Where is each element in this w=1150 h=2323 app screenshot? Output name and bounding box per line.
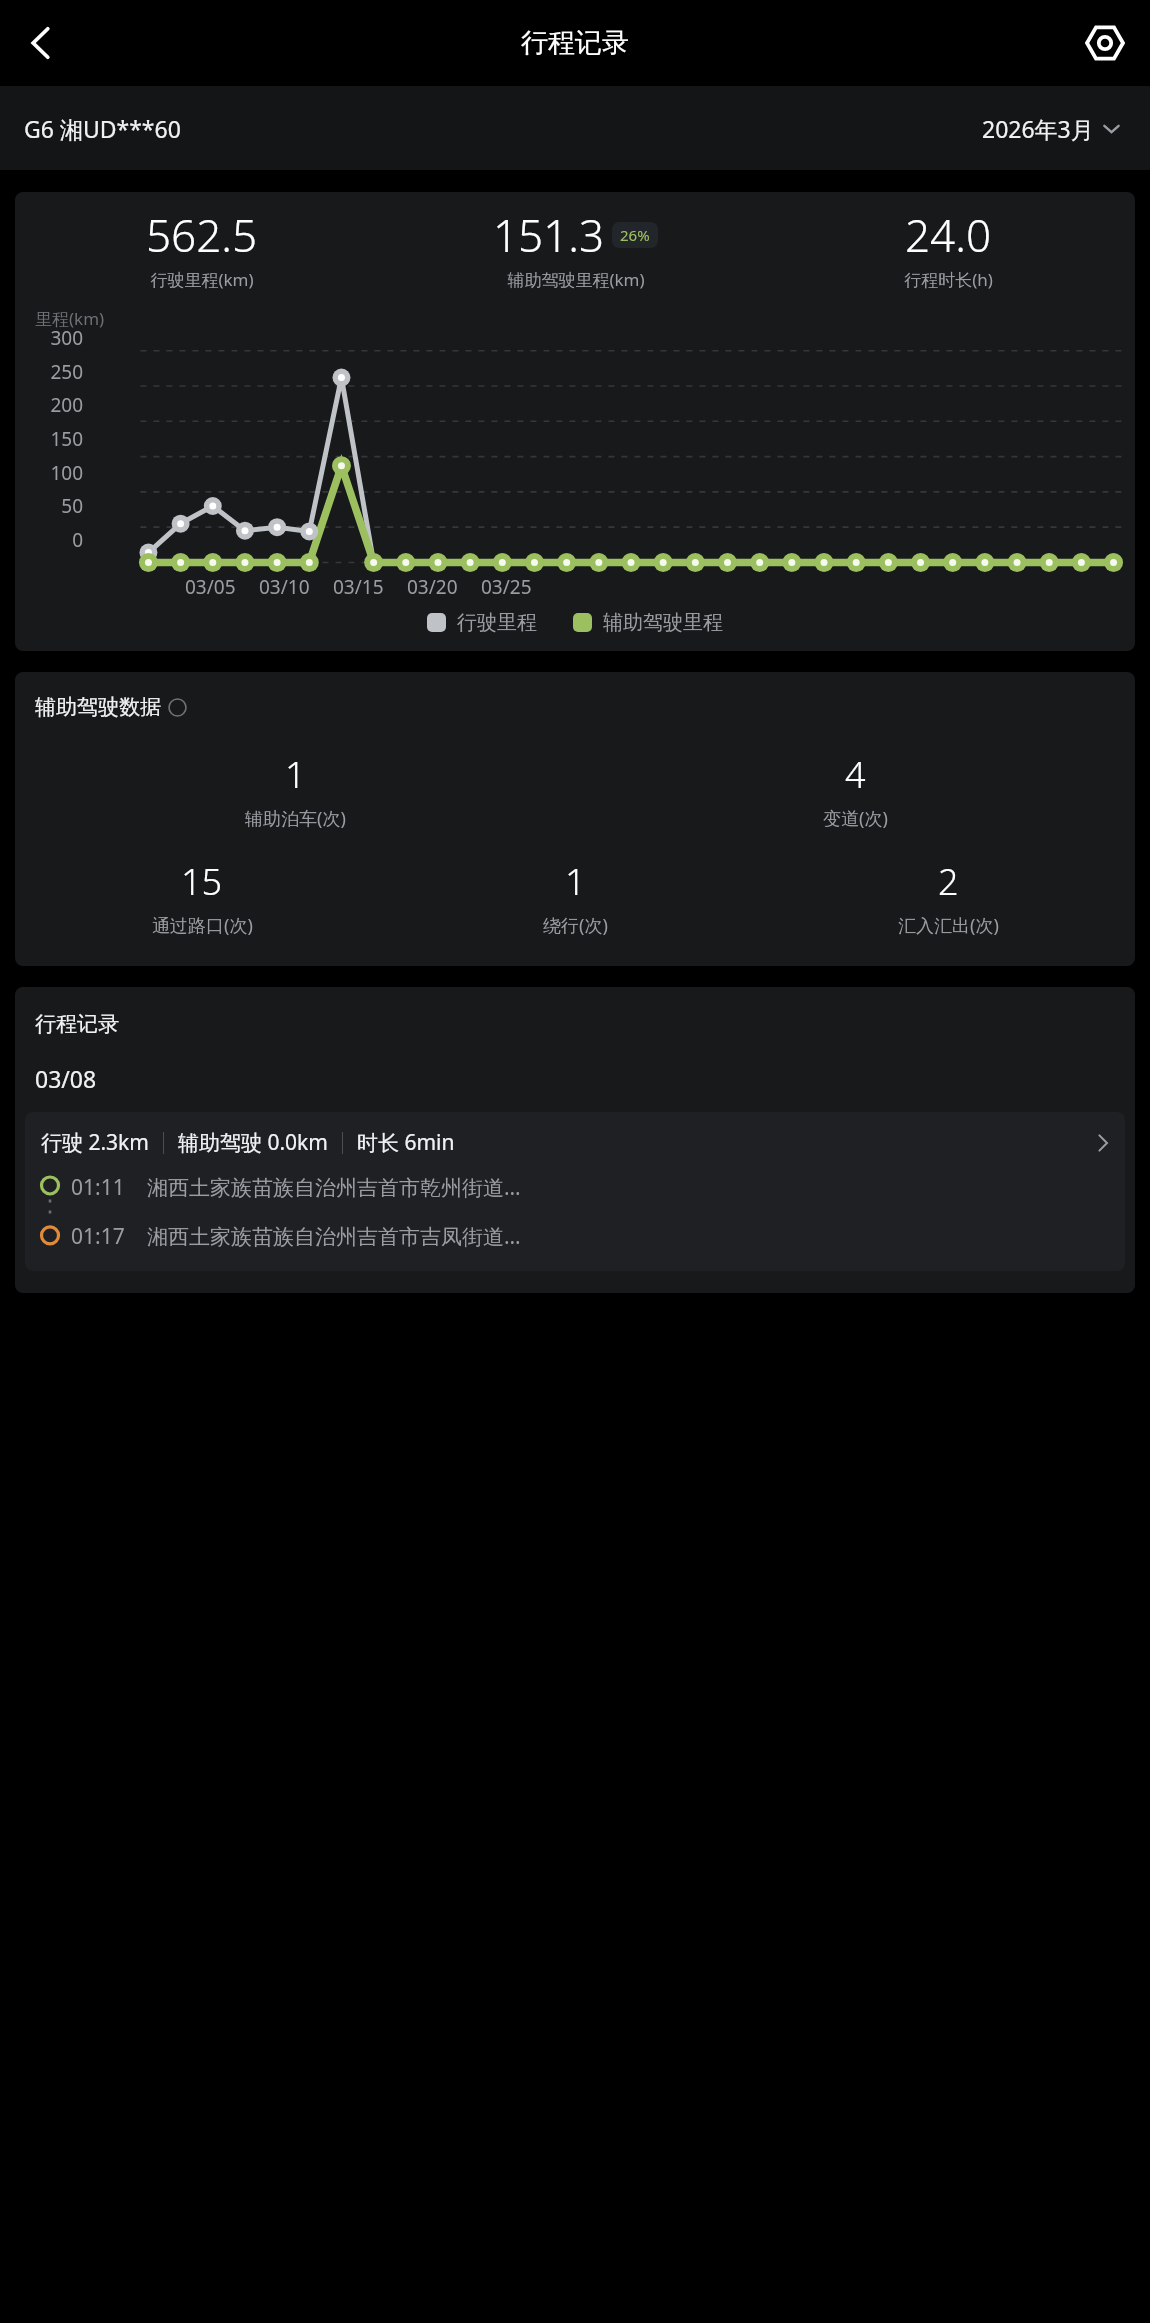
button[interactable]: 1	[15, 750, 575, 831]
button[interactable]: 返回	[4, 6, 78, 80]
staticText: 辅助驾驶数据	[35, 694, 161, 720]
staticText: 562.5	[146, 205, 258, 265]
staticText: 行程时长(h)	[904, 268, 993, 291]
button[interactable]: 辅助驾驶数据	[35, 694, 187, 720]
staticText: 汇入汇出(次)	[898, 913, 999, 938]
button[interactable]: 辅助驾驶里程	[573, 610, 723, 635]
staticText: 2	[938, 857, 959, 906]
staticText: 50	[29, 493, 83, 519]
staticText: G6 湘UD***60	[24, 113, 181, 144]
staticText: 行驶 2.3km	[41, 1128, 149, 1157]
staticText: 0	[29, 527, 83, 553]
button[interactable]: 行驶里程	[427, 610, 537, 635]
staticText: 151.3	[493, 205, 605, 265]
staticText: 绕行(次)	[543, 913, 608, 938]
staticText: 变道(次)	[823, 806, 888, 831]
staticText: 24.0	[905, 205, 992, 265]
staticText: 行程记录	[35, 1011, 119, 1037]
staticText: 03/25	[481, 574, 532, 600]
button[interactable]: 设置	[1068, 6, 1142, 80]
staticText: 01:17	[71, 1222, 125, 1251]
staticText: 行驶里程	[457, 610, 537, 635]
staticText: 300	[29, 325, 83, 351]
staticText: 250	[29, 359, 83, 385]
staticText: 辅助驾驶 0.0km	[178, 1128, 328, 1157]
button[interactable]: 4	[575, 750, 1135, 831]
staticText: 辅助驾驶里程(km)	[507, 268, 645, 291]
staticText: 时长 6min	[357, 1128, 455, 1157]
button[interactable]: 2	[762, 857, 1135, 938]
button[interactable]: 2026年3月	[976, 107, 1126, 150]
staticText: 湘西土家族苗族自治州吉首市乾州街道…	[147, 1173, 521, 1202]
button[interactable]: 1	[389, 857, 762, 938]
button[interactable]: 15	[15, 857, 389, 938]
staticText: 100	[29, 460, 83, 486]
button[interactable]: 562.5	[15, 205, 389, 291]
staticText: 湘西土家族苗族自治州吉首市吉凤街道…	[147, 1222, 521, 1251]
staticText: 通过路口(次)	[152, 913, 253, 938]
staticText: 辅助泊车(次)	[245, 806, 346, 831]
staticText: 03/10	[259, 574, 310, 600]
staticText: 200	[29, 392, 83, 418]
staticText: 150	[29, 426, 83, 452]
staticText: 行驶里程(km)	[150, 268, 254, 291]
staticText: 里程(km)	[35, 307, 105, 330]
staticText: 行程记录	[521, 26, 629, 60]
staticText: 15	[181, 857, 223, 906]
staticText: 03/08	[35, 1063, 97, 1094]
staticText: 26%	[620, 225, 650, 245]
staticText: 03/05	[185, 574, 236, 600]
staticText: 01:11	[71, 1173, 125, 1202]
staticText: 1	[285, 750, 306, 799]
staticText: 辅助驾驶里程	[603, 610, 723, 635]
button[interactable]: 151.3	[389, 205, 762, 291]
button[interactable]: 24.0	[762, 205, 1135, 291]
button[interactable]: 行驶 2.3km	[25, 1112, 1125, 1271]
staticText: 4	[845, 750, 866, 799]
staticText: 03/15	[333, 574, 384, 600]
staticText: 2026年3月	[982, 113, 1094, 144]
staticText: 03/20	[407, 574, 458, 600]
staticText: 1	[565, 857, 586, 906]
